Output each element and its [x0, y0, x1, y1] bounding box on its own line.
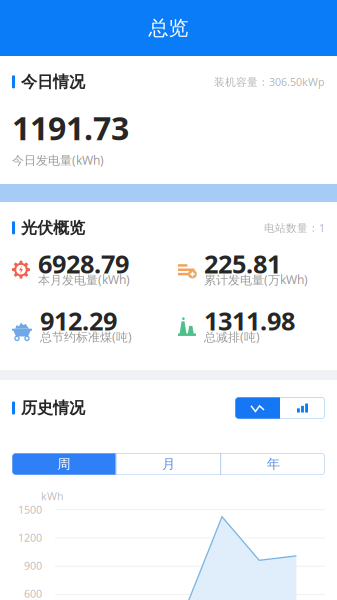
button[interactable]: 年 [221, 453, 325, 475]
staticText: 900 [24, 559, 42, 573]
staticText: 225.81 [204, 247, 281, 280]
staticText: 累计发电量(万kWh) [204, 272, 308, 288]
staticText: 光伏概览 [21, 218, 85, 238]
staticText: 历史情况 [21, 398, 85, 418]
staticText: 总减排(吨) [204, 329, 260, 345]
staticText: 600 [24, 587, 42, 600]
staticText: 1311.98 [204, 304, 295, 337]
staticText: 912.29 [40, 304, 117, 337]
staticText: 6928.79 [38, 247, 129, 280]
staticText: 1500 [18, 503, 42, 517]
staticText: 月 [162, 456, 175, 472]
staticText: 年 [267, 456, 280, 472]
staticText: 电站数量：1 [264, 221, 325, 235]
staticText: 1191.73 [12, 107, 129, 149]
staticText: 装机容量：306.50kWp [214, 75, 325, 89]
staticText: kWh [41, 489, 64, 503]
staticText: 总节约标准煤(吨) [40, 329, 132, 345]
staticText: 本月发电量(kWh) [38, 272, 130, 288]
button[interactable]: 周 [12, 453, 116, 475]
staticText: 1200 [18, 531, 42, 545]
staticText: 今日发电量(kWh) [12, 152, 104, 168]
button[interactable]: Bar chart [280, 397, 325, 419]
button[interactable]: 月 [117, 453, 220, 475]
staticText: 总览 [148, 16, 188, 40]
button[interactable]: Line chart [235, 397, 280, 419]
staticText: 周 [57, 456, 70, 472]
staticText: 今日情况 [21, 72, 85, 92]
